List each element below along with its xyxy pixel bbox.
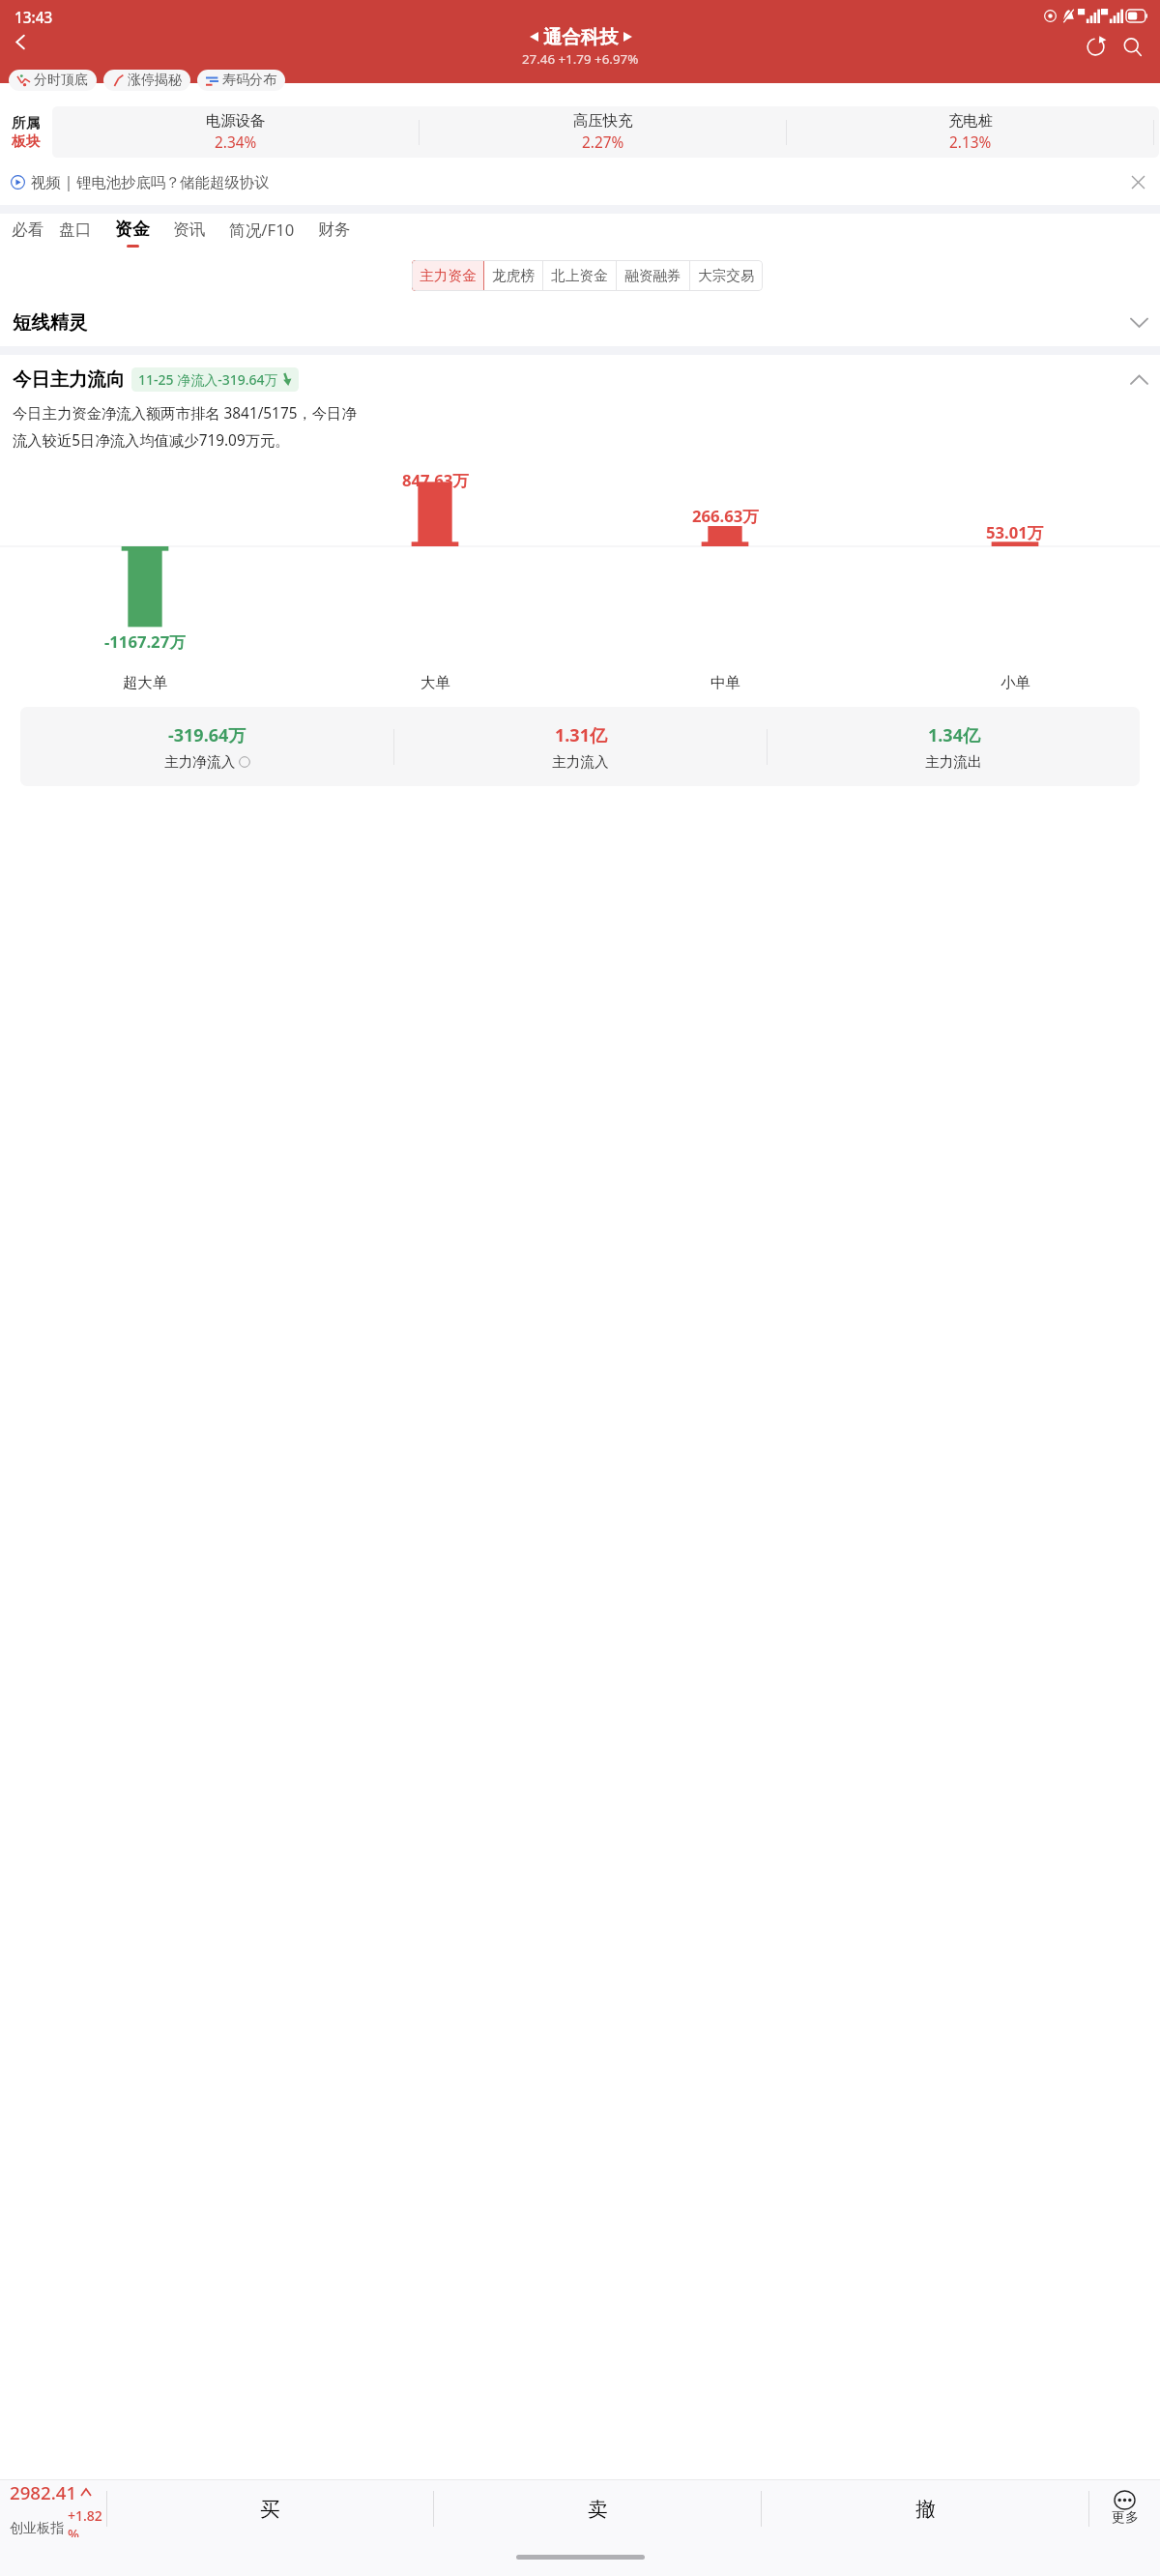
staticText: 卖 bbox=[588, 2497, 608, 2522]
staticText: 必看 bbox=[12, 220, 44, 240]
staticText: 资讯 bbox=[173, 220, 206, 240]
staticText: 流入较近5日净流入均值减少719.09万元。 bbox=[13, 430, 290, 451]
button[interactable]: Close bbox=[1127, 171, 1149, 193]
button[interactable]: Search bbox=[1116, 31, 1148, 63]
button[interactable]: 卖 bbox=[434, 2480, 761, 2537]
button[interactable]: 视频 | 锂电池抄底吗？储能超级协议 bbox=[11, 160, 1149, 205]
staticText: 主力流入 bbox=[552, 753, 609, 771]
staticText: 主力流出 bbox=[925, 753, 982, 771]
button[interactable]: 1.31亿 bbox=[394, 707, 767, 786]
staticText: 龙虎榜 bbox=[492, 267, 535, 284]
staticText: 撤 bbox=[915, 2497, 936, 2522]
staticText: 今日主力资金净流入额两市排名 3841/5175，今日净 bbox=[13, 403, 357, 424]
staticText: 小单 bbox=[1000, 673, 1030, 691]
staticText: 266.63万 bbox=[692, 505, 759, 527]
button[interactable]: 买 bbox=[107, 2480, 433, 2537]
button[interactable]: 涨停揭秘 bbox=[112, 70, 182, 91]
staticText: 大宗交易 bbox=[698, 267, 755, 284]
staticText: 1.31亿 bbox=[555, 723, 607, 747]
button[interactable]: 1.34亿 bbox=[768, 707, 1140, 786]
button[interactable]: Refresh bbox=[1080, 31, 1112, 63]
button[interactable]: 分时顶底 bbox=[17, 70, 88, 91]
button[interactable]: 简况/F10 bbox=[220, 214, 304, 252]
button[interactable]: 财务 bbox=[309, 214, 360, 252]
button[interactable]: 寿码分布 bbox=[206, 70, 276, 91]
staticText: 北上资金 bbox=[551, 267, 608, 284]
button[interactable]: 资讯 bbox=[164, 214, 215, 252]
button[interactable]: 短线精灵 bbox=[13, 298, 1147, 346]
button[interactable]: 今日主力流向 bbox=[13, 355, 1147, 403]
staticText: 盘口 bbox=[59, 220, 92, 240]
button[interactable]: 大宗交易 bbox=[698, 260, 755, 291]
staticText: 电源设备 bbox=[206, 111, 266, 130]
button[interactable]: -319.64万 bbox=[20, 707, 393, 786]
staticText: 27.46 +1.79 +6.97% bbox=[522, 50, 639, 68]
button[interactable]: 主力资金 bbox=[420, 260, 477, 291]
staticText: 2.13% bbox=[949, 132, 992, 153]
button[interactable]: 必看 bbox=[12, 214, 44, 252]
staticText: 2982.41 bbox=[10, 2480, 77, 2504]
staticText: 寿码分布 bbox=[222, 72, 276, 89]
staticText: 11-25 净流入-319.64万 bbox=[138, 370, 278, 389]
staticText: 涨停揭秘 bbox=[128, 72, 182, 89]
staticText: 资金 bbox=[115, 219, 150, 241]
staticText: 充电桩 bbox=[948, 111, 993, 130]
staticText: 847.63万 bbox=[402, 469, 469, 491]
staticText: -319.64万 bbox=[168, 723, 246, 747]
staticText: 融资融券 bbox=[624, 267, 681, 284]
staticText: 13:43 bbox=[14, 8, 53, 28]
staticText: 所属 bbox=[12, 114, 41, 132]
button[interactable]: Back bbox=[3, 24, 39, 60]
staticText: 中单 bbox=[710, 673, 740, 691]
staticText: 创业板指 bbox=[10, 2520, 64, 2537]
button[interactable]: 撤 bbox=[762, 2480, 1088, 2537]
button[interactable]: 充电桩 bbox=[787, 106, 1153, 158]
button[interactable]: 通合科技 bbox=[522, 25, 639, 68]
button[interactable]: 2982.41 bbox=[0, 2480, 106, 2537]
button[interactable]: 北上资金 bbox=[551, 260, 608, 291]
staticText: 短线精灵 bbox=[13, 310, 88, 334]
staticText: 分时顶底 bbox=[34, 72, 88, 89]
button[interactable]: 资金 bbox=[106, 214, 159, 252]
staticText: 高压快充 bbox=[573, 111, 633, 130]
button[interactable]: 更多 bbox=[1089, 2480, 1160, 2537]
staticText: 买 bbox=[260, 2497, 280, 2522]
staticText: 通合科技 bbox=[543, 25, 619, 48]
staticText: -1167.27万 bbox=[104, 630, 186, 653]
staticText: 53.01万 bbox=[986, 521, 1044, 543]
staticText: 主力资金 bbox=[420, 267, 477, 284]
staticText: 超大单 bbox=[123, 673, 167, 691]
staticText: 大单 bbox=[420, 673, 450, 691]
staticText: 2.27% bbox=[582, 132, 624, 153]
button[interactable]: 盘口 bbox=[50, 214, 101, 252]
staticText: 1.34亿 bbox=[928, 723, 980, 747]
button[interactable]: 电源设备 bbox=[52, 106, 419, 158]
button[interactable]: 高压快充 bbox=[420, 106, 786, 158]
button[interactable]: 龙虎榜 bbox=[492, 260, 535, 291]
staticText: 视频 | 锂电池抄底吗？储能超级协议 bbox=[31, 172, 270, 192]
staticText: 主力净流入 bbox=[164, 753, 236, 771]
staticText: 今日主力流向 bbox=[13, 367, 125, 391]
staticText: +1.82% bbox=[68, 2506, 106, 2537]
staticText: 板块 bbox=[12, 132, 41, 150]
staticText: 财务 bbox=[318, 220, 351, 240]
staticText: 更多 bbox=[1112, 2509, 1139, 2527]
button[interactable]: 融资融券 bbox=[624, 260, 681, 291]
staticText: 2.34% bbox=[215, 132, 257, 153]
staticText: 简况/F10 bbox=[229, 219, 295, 241]
